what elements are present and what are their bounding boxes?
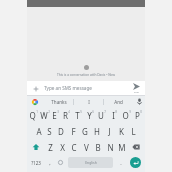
button[interactable]: Google — [31, 98, 39, 106]
staticText: Z — [48, 142, 53, 153]
button[interactable]: Backspace — [128, 139, 144, 155]
button[interactable]: I — [108, 107, 120, 123]
button[interactable]: Send SMS — [129, 81, 143, 95]
button[interactable]: N — [104, 139, 116, 155]
button[interactable]: . — [115, 155, 126, 170]
button[interactable]: O — [120, 107, 132, 123]
button[interactable]: D — [55, 123, 67, 139]
button[interactable]: Shift — [28, 139, 44, 155]
button[interactable]: T — [72, 107, 84, 123]
staticText: ?123 — [31, 160, 41, 166]
staticText: N — [107, 142, 114, 153]
button[interactable]: U — [96, 107, 108, 123]
button[interactable]: R — [61, 107, 72, 123]
button[interactable]: P — [132, 107, 144, 123]
button[interactable]: Y — [84, 107, 96, 123]
button[interactable]: Add attachment — [27, 81, 145, 95]
button[interactable]: S — [44, 123, 55, 139]
staticText: V — [84, 142, 89, 153]
staticText: This is a conversation with Davis • Now — [57, 73, 115, 77]
staticText: 7 — [104, 110, 106, 114]
button[interactable]: C — [68, 139, 80, 155]
button[interactable]: , — [44, 155, 55, 170]
staticText: 4 — [68, 110, 70, 114]
staticText: English — [85, 160, 97, 165]
staticText: O — [122, 110, 129, 121]
staticText: K — [119, 126, 124, 137]
button[interactable]: Z — [44, 139, 56, 155]
staticText: B — [95, 142, 101, 153]
button[interactable]: Voice input — [133, 96, 145, 107]
staticText: T — [75, 110, 80, 121]
staticText: X — [60, 142, 65, 153]
button[interactable]: G — [79, 123, 91, 139]
staticText: M — [118, 142, 126, 153]
button[interactable]: English — [68, 157, 113, 168]
staticText: . — [120, 159, 122, 166]
staticText: Thanks — [51, 99, 67, 105]
staticText: P — [135, 110, 140, 121]
button[interactable]: K — [115, 123, 127, 139]
button[interactable]: F — [67, 123, 79, 139]
staticText: SMS — [134, 90, 139, 93]
staticText: 8 — [115, 110, 117, 114]
staticText: I — [88, 99, 90, 105]
staticText: S — [47, 126, 52, 137]
staticText: U — [98, 110, 104, 121]
button[interactable]: Emoji — [55, 155, 66, 170]
button[interactable]: Q — [28, 107, 39, 123]
staticText: 3 — [57, 110, 59, 114]
staticText: G — [82, 126, 88, 137]
staticText: Q — [29, 110, 36, 121]
staticText: 5 — [80, 110, 82, 114]
staticText: J — [108, 126, 111, 137]
button[interactable]: A — [33, 123, 44, 139]
staticText: And — [114, 99, 123, 105]
staticText: W — [40, 110, 48, 121]
button[interactable]: Thanks — [44, 96, 73, 107]
button[interactable]: L — [127, 123, 139, 139]
button[interactable]: ?123 — [28, 155, 44, 170]
button[interactable]: M — [116, 139, 128, 155]
staticText: 9 — [129, 110, 131, 114]
staticText: Type an SMS message — [44, 85, 92, 91]
button[interactable]: Add attachment — [31, 84, 40, 93]
button[interactable]: X — [56, 139, 68, 155]
staticText: D — [58, 126, 64, 137]
staticText: H — [94, 126, 100, 137]
staticText: 1 — [36, 110, 38, 114]
button[interactable]: I — [74, 96, 103, 107]
staticText: 0 — [140, 110, 142, 114]
staticText: , — [49, 159, 51, 166]
staticText: C — [71, 142, 77, 153]
staticText: I — [112, 110, 115, 121]
staticText: F — [71, 126, 76, 137]
staticText: 2 — [48, 110, 50, 114]
staticText: L — [131, 126, 136, 137]
button[interactable]: B — [92, 139, 104, 155]
button[interactable]: And — [104, 96, 133, 107]
button[interactable]: Enter — [130, 157, 141, 168]
button[interactable]: W — [39, 107, 50, 123]
button[interactable]: J — [103, 123, 115, 139]
button[interactable]: E — [50, 107, 61, 123]
button[interactable]: H — [91, 123, 103, 139]
button[interactable]: V — [80, 139, 92, 155]
staticText: E — [52, 110, 57, 121]
staticText: Y — [87, 110, 92, 121]
staticText: R — [63, 110, 68, 121]
staticText: A — [36, 126, 42, 137]
staticText: 6 — [92, 110, 94, 114]
